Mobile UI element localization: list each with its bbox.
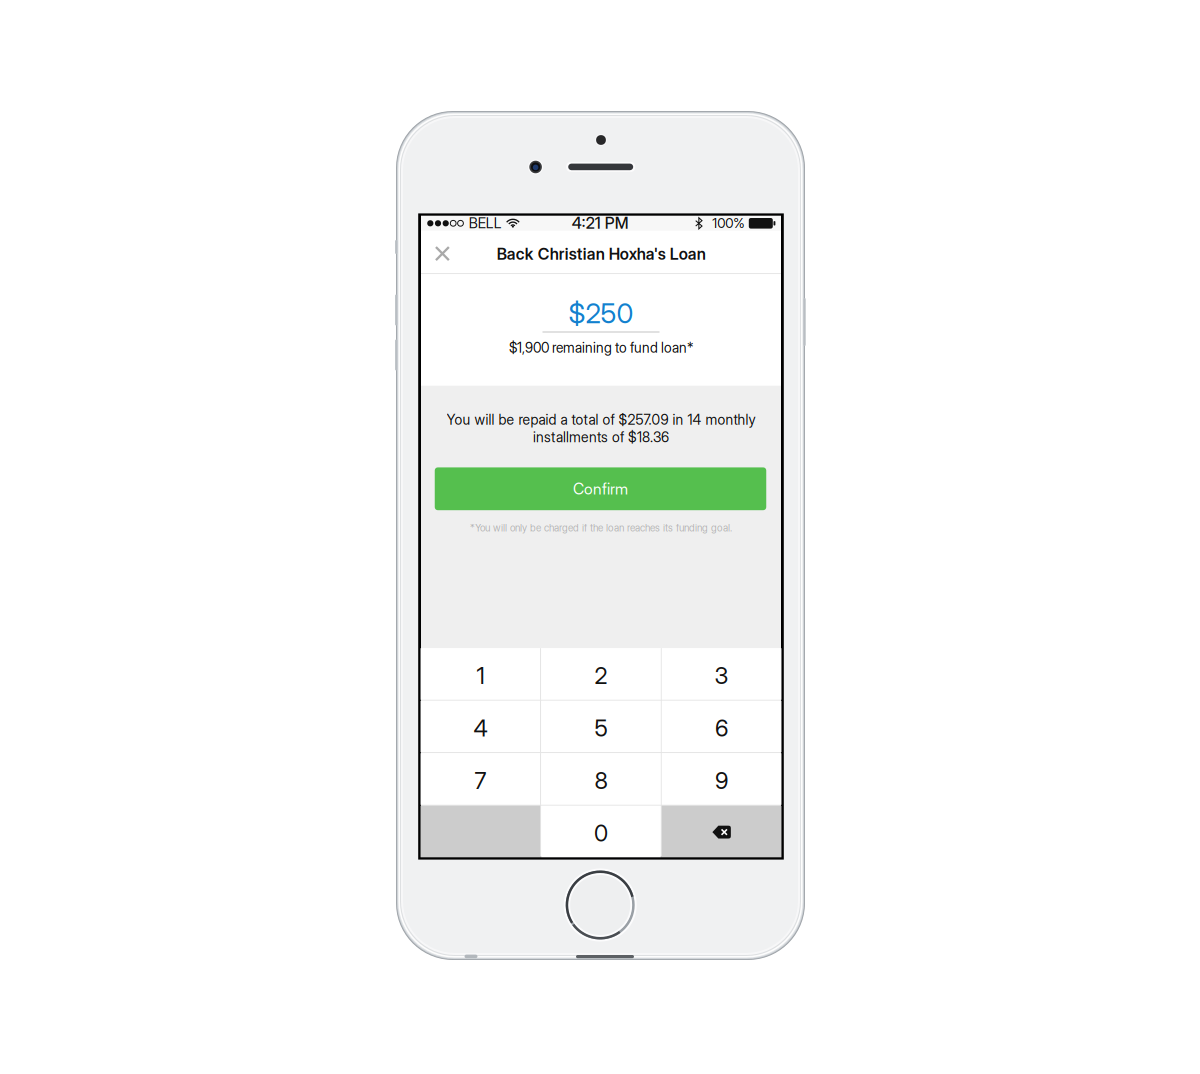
button[interactable]: 2 — [541, 648, 661, 700]
staticText: 100% — [712, 215, 744, 231]
staticText: 4:21 PM — [572, 213, 629, 233]
staticText: 7 — [474, 767, 486, 794]
staticText: 4 — [473, 714, 487, 742]
staticText: BELL — [469, 214, 502, 231]
button[interactable]: Confirm — [435, 467, 766, 510]
button[interactable] — [420, 806, 540, 857]
button[interactable]: Close — [421, 232, 463, 275]
staticText: 6 — [715, 714, 728, 742]
button[interactable]: 9 — [662, 753, 781, 805]
staticText: installments of $18.36 — [533, 429, 669, 446]
staticText: 0 — [594, 819, 608, 847]
staticText: 1 — [476, 662, 484, 689]
staticText: 2 — [594, 662, 607, 689]
staticText: 3 — [715, 662, 729, 689]
button[interactable]: 3 — [662, 648, 781, 700]
staticText: Back Christian Hoxha's Loan — [497, 244, 706, 264]
button[interactable]: 7 — [420, 753, 540, 805]
button[interactable]: 1 — [420, 648, 540, 700]
button[interactable]: 8 — [541, 753, 661, 805]
button[interactable]: 6 — [662, 701, 781, 752]
staticText: 5 — [594, 714, 607, 742]
staticText: $250 — [568, 297, 633, 330]
button[interactable]: 5 — [541, 701, 661, 752]
staticText: Confirm — [573, 479, 628, 498]
button[interactable]: 0 — [541, 806, 661, 857]
staticText: *You will only be charged if the loan re… — [470, 522, 732, 534]
staticText: 9 — [715, 767, 728, 794]
button[interactable]: 4 — [420, 701, 540, 752]
staticText: 8 — [594, 767, 607, 794]
button[interactable]: Delete — [662, 806, 781, 857]
staticText: $1,900 remaining to fund loan* — [509, 339, 693, 356]
staticText: You will be repaid a total of $257.09 in… — [446, 411, 755, 428]
